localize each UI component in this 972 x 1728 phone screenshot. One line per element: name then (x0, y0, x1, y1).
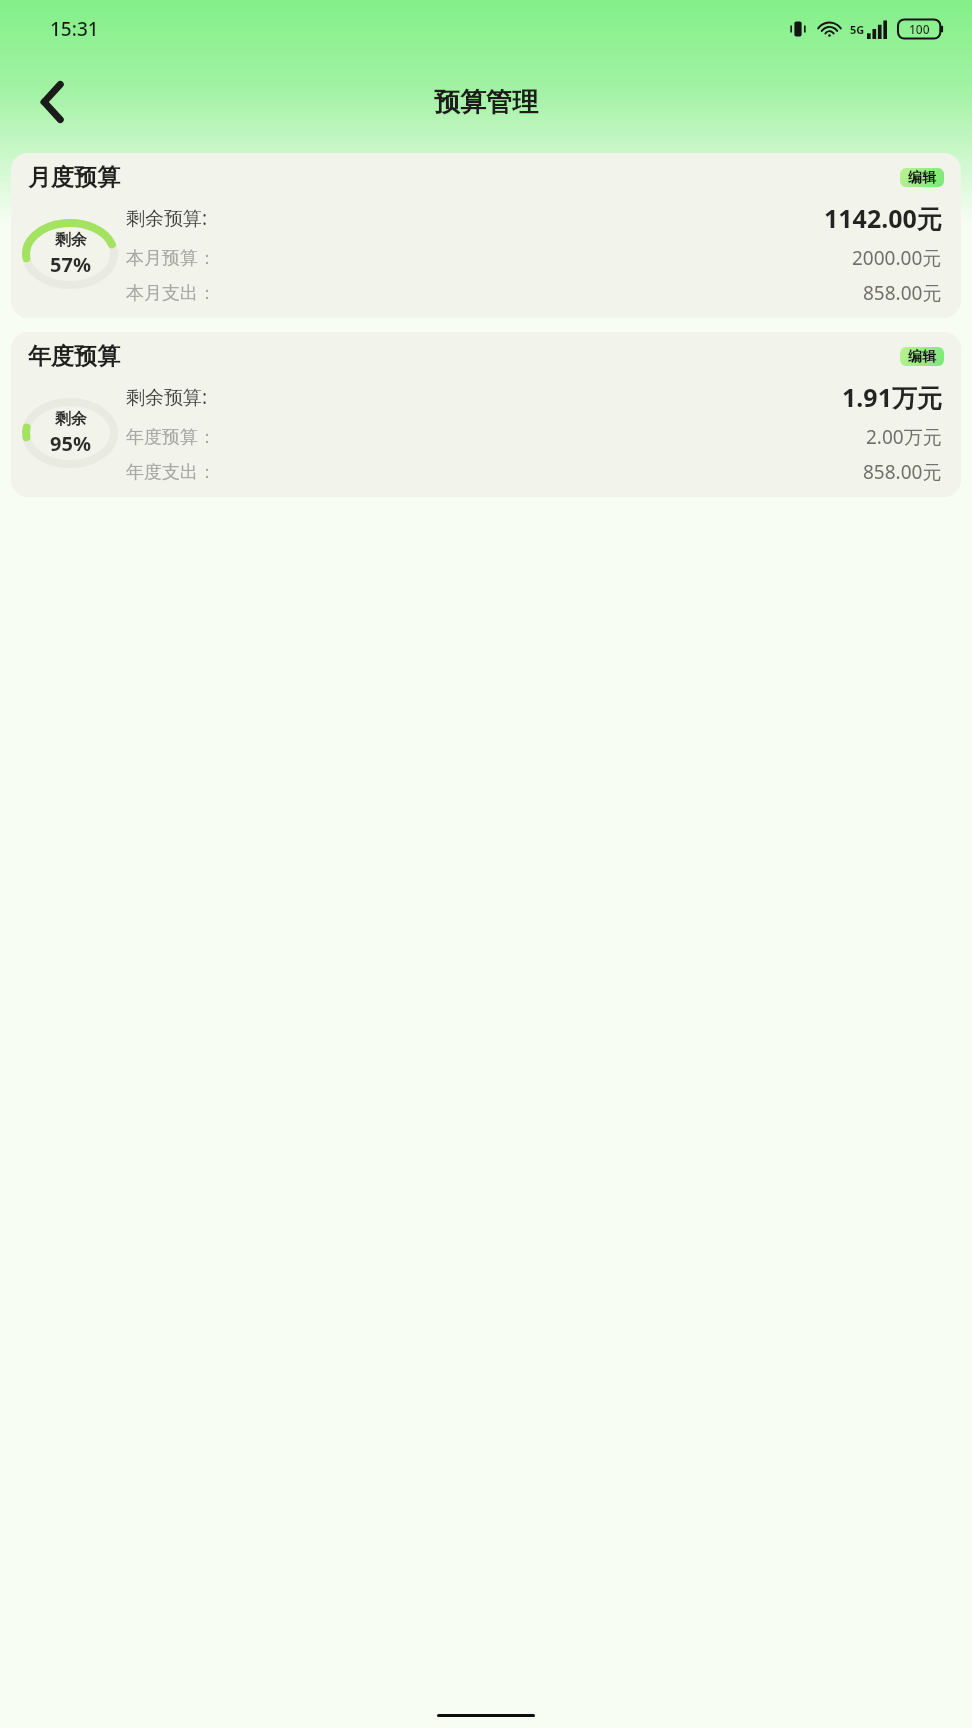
staticText: 1.91万元 (842, 380, 942, 414)
staticText: 剩余 (55, 230, 87, 250)
staticText: 年度预算： (126, 426, 216, 449)
staticText: 剩余预算: (126, 384, 208, 410)
staticText: 1142.00元 (824, 201, 942, 235)
staticText: 年度预算 (28, 342, 120, 371)
staticText: 本月支出： (126, 282, 216, 305)
staticText: 本月预算： (126, 247, 216, 270)
staticText: 5G (850, 22, 865, 37)
staticText: 15:31 (50, 16, 99, 42)
staticText: 编辑 (908, 169, 936, 187)
staticText: 858.00元 (863, 459, 942, 485)
staticText: 月度预算 (28, 163, 120, 192)
staticText: 剩余 (55, 409, 87, 429)
staticText: 剩余预算: (126, 205, 208, 231)
staticText: 858.00元 (863, 280, 942, 306)
staticText: 57% (50, 251, 91, 278)
staticText: 年度支出： (126, 461, 216, 484)
staticText: 100 (909, 21, 930, 37)
button[interactable]: 编辑 (900, 347, 944, 366)
staticText: 编辑 (908, 348, 936, 366)
staticText: 预算管理 (434, 86, 538, 119)
button[interactable]: 月度预算 (11, 153, 961, 318)
button[interactable]: 编辑 (900, 168, 944, 187)
staticText: 2.00万元 (866, 424, 942, 450)
button[interactable]: Back (22, 71, 84, 133)
staticText: 95% (50, 430, 91, 457)
button[interactable]: 年度预算 (11, 332, 961, 497)
staticText: 2000.00元 (852, 245, 942, 271)
